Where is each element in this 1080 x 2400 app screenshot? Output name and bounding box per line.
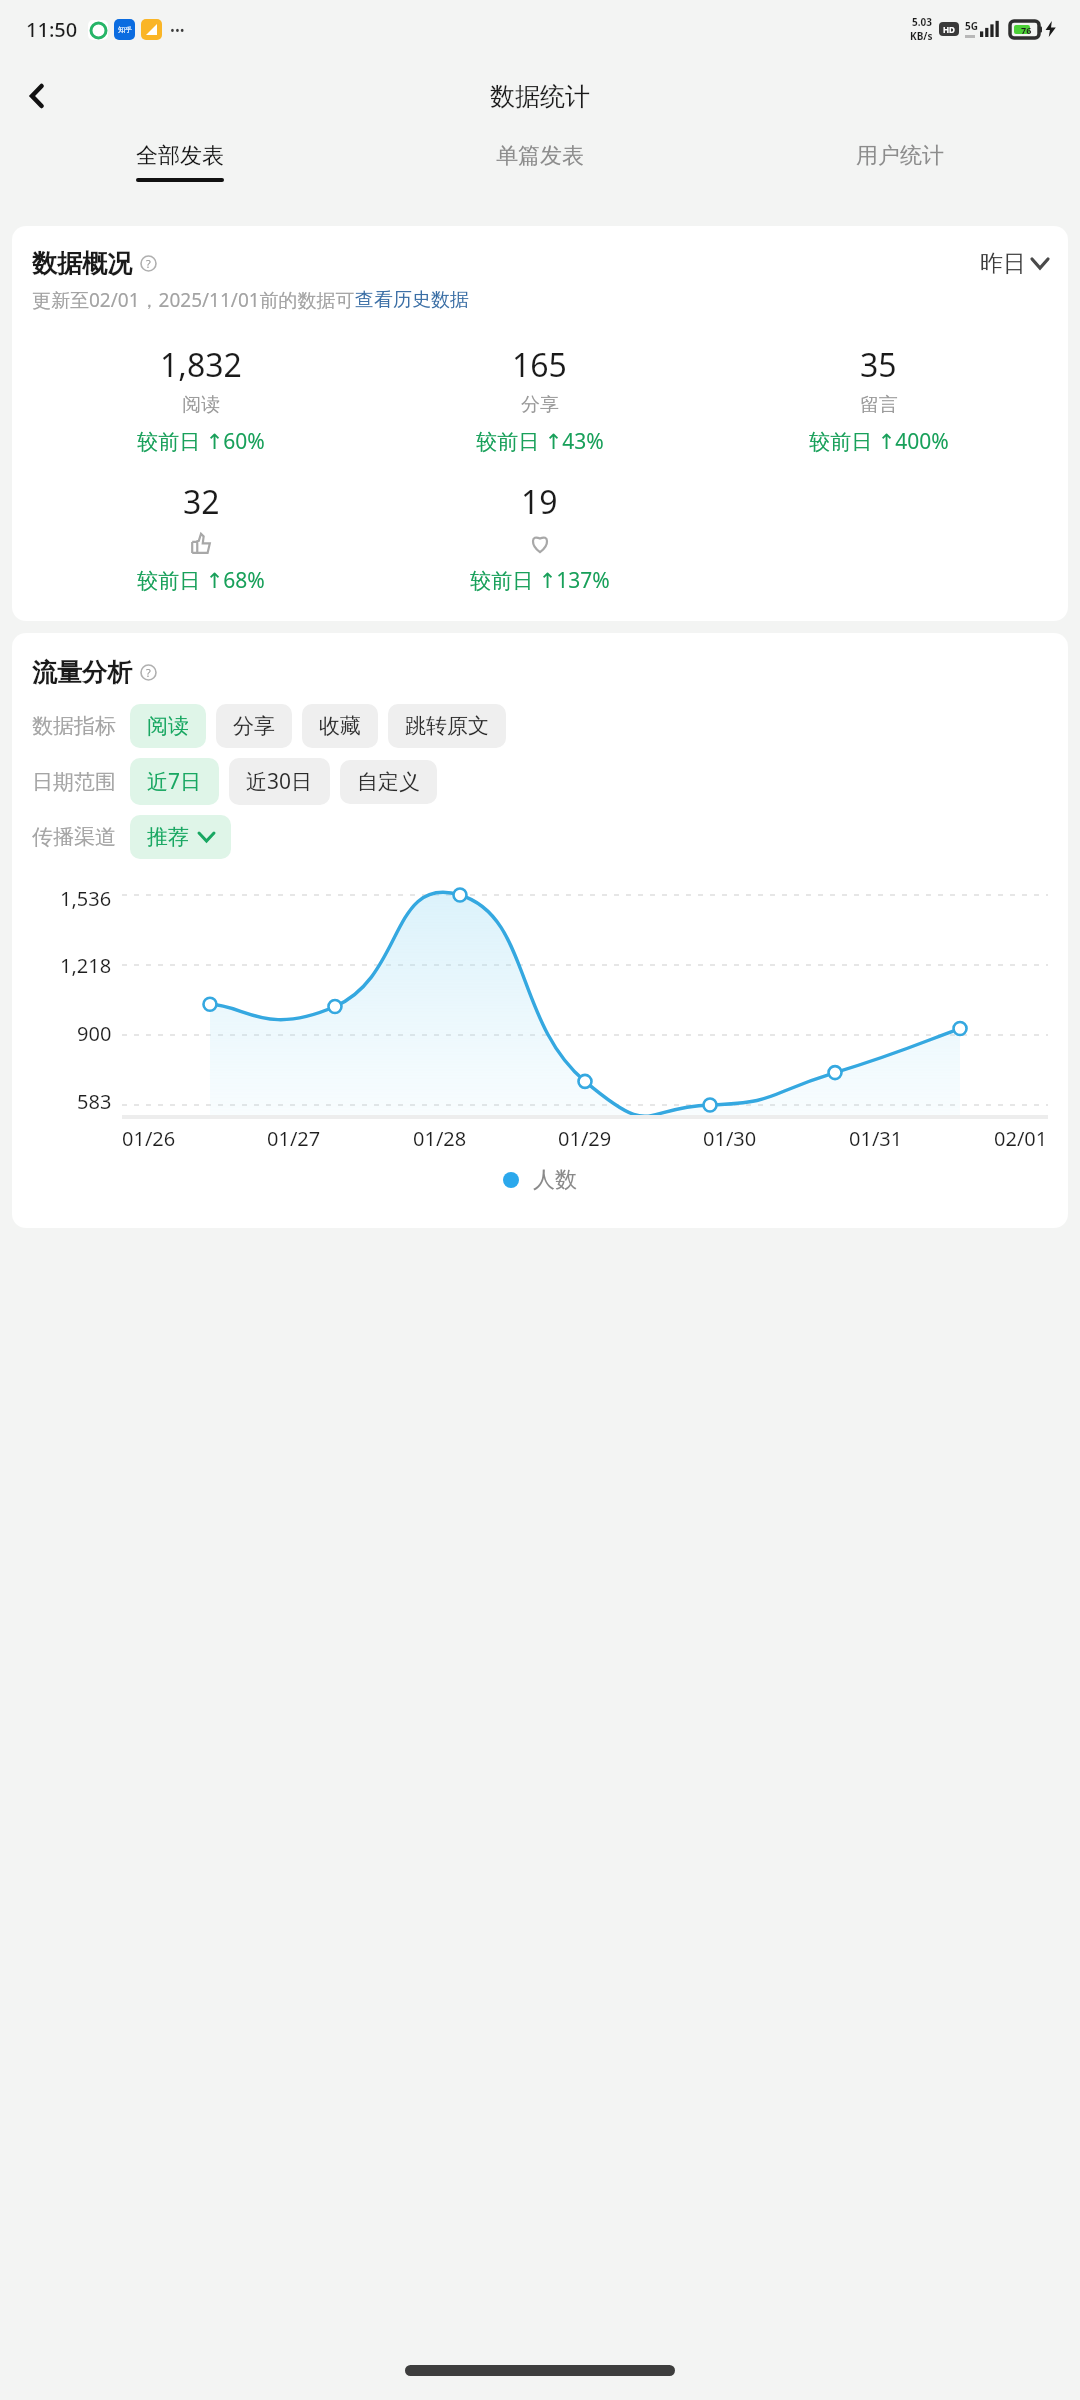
staticText: 01/26 (122, 1125, 176, 1152)
staticText: 较前日 ↑60% (137, 427, 265, 456)
staticText: 165 (512, 343, 567, 387)
button[interactable]: Back (14, 72, 62, 120)
button[interactable]: 分享 (216, 704, 292, 748)
staticText: 日期范围 (32, 769, 116, 795)
staticText: 收藏 (319, 713, 361, 739)
staticText: 知乎 (118, 25, 132, 34)
staticText: 583 (77, 1088, 112, 1115)
staticText: 76 (1021, 24, 1032, 36)
staticText: 流量分析 (32, 657, 132, 688)
staticText: 数据指标 (32, 713, 116, 739)
button[interactable]: 查看历史数据 (355, 288, 469, 312)
button[interactable]: 用户统计 (720, 134, 1080, 210)
staticText: ? (146, 665, 151, 680)
button[interactable]: Help (135, 659, 162, 686)
button[interactable]: 单篇发表 (360, 134, 720, 210)
staticText: 传播渠道 (32, 824, 116, 850)
button[interactable]: Help (135, 250, 162, 277)
button[interactable]: 跳转原文 (388, 704, 506, 748)
button[interactable]: 收藏 (302, 704, 378, 748)
staticText: ••• (170, 21, 185, 39)
staticText: 01/28 (413, 1125, 467, 1152)
staticText: 较前日 ↑137% (470, 566, 610, 595)
staticText: 较前日 ↑68% (137, 566, 265, 595)
staticText: 单篇发表 (496, 142, 584, 170)
staticText: 分享 (521, 393, 559, 417)
staticText: 1,832 (160, 343, 242, 387)
button[interactable]: 19 (370, 480, 709, 595)
staticText: 5.03 (912, 15, 932, 29)
staticText: 分享 (233, 713, 275, 739)
staticText: 近7日 (147, 767, 202, 796)
staticText: 35 (860, 343, 897, 387)
button[interactable]: 35 (709, 343, 1048, 456)
staticText: ? (146, 256, 151, 271)
staticText: 32 (183, 480, 220, 524)
staticText: 较前日 ↑43% (476, 427, 604, 456)
button[interactable]: 165 (370, 343, 709, 456)
staticText: 近30日 (246, 767, 313, 796)
staticText: 留言 (860, 393, 898, 417)
button[interactable]: 近7日 (130, 758, 219, 805)
staticText: 01/30 (703, 1125, 757, 1152)
staticText: 跳转原文 (405, 713, 489, 739)
button[interactable]: 昨日 (980, 249, 1048, 278)
button[interactable]: 近30日 (229, 758, 330, 805)
button[interactable]: 推荐 (130, 815, 231, 859)
staticText: 5G (965, 19, 978, 33)
staticText: 阅读 (147, 713, 189, 739)
staticText: HD (943, 24, 955, 35)
staticText: 阅读 (182, 393, 220, 417)
staticText: 1,536 (60, 885, 112, 912)
staticText: 01/29 (558, 1125, 612, 1152)
staticText: 01/31 (849, 1125, 903, 1152)
staticText: 用户统计 (856, 142, 944, 170)
staticText: 昨日 (980, 249, 1026, 278)
button[interactable]: 阅读 (130, 704, 206, 748)
staticText: 更新至02/01，2025/11/01前的数据可 (32, 287, 355, 313)
staticText: 人数 (533, 1166, 577, 1194)
staticText: 数据概况 (32, 248, 132, 279)
staticText: 11:50 (26, 16, 78, 43)
button[interactable]: 自定义 (340, 760, 437, 804)
staticText: 1,218 (60, 952, 112, 979)
staticText: 02/01 (994, 1125, 1048, 1152)
button[interactable]: 全部发表 (0, 134, 360, 210)
staticText: 较前日 ↑400% (809, 427, 949, 456)
button[interactable]: 32 (32, 480, 370, 595)
button[interactable]: 1,832 (32, 343, 370, 456)
staticText: 01/27 (267, 1125, 321, 1152)
staticText: 自定义 (357, 769, 420, 795)
staticText: 数据统计 (490, 81, 590, 112)
staticText: KB/s (910, 29, 933, 43)
staticText: 全部发表 (136, 142, 224, 170)
staticText: 900 (77, 1020, 112, 1047)
staticText: 推荐 (147, 824, 189, 850)
staticText: 19 (521, 480, 558, 524)
